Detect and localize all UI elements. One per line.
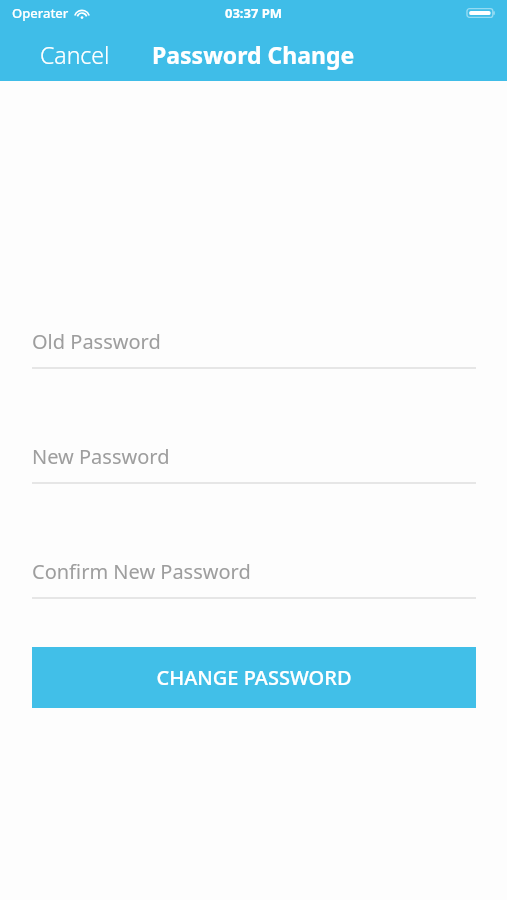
staticText: Operater [12, 4, 69, 22]
staticText: New Password [32, 443, 170, 470]
button[interactable]: CHANGE PASSWORD [32, 647, 476, 708]
button[interactable]: Confirm New Password [32, 558, 476, 599]
staticText: 03:37 PM [225, 4, 283, 22]
button[interactable]: Old Password [32, 328, 476, 369]
staticText: Old Password [32, 328, 161, 355]
staticText: Cancel [40, 39, 110, 70]
staticText: CHANGE PASSWORD [156, 664, 352, 691]
button[interactable]: New Password [32, 443, 476, 484]
staticText: Confirm New Password [32, 558, 251, 585]
staticText: Password Change [152, 39, 355, 70]
button[interactable]: Cancel [28, 33, 122, 76]
